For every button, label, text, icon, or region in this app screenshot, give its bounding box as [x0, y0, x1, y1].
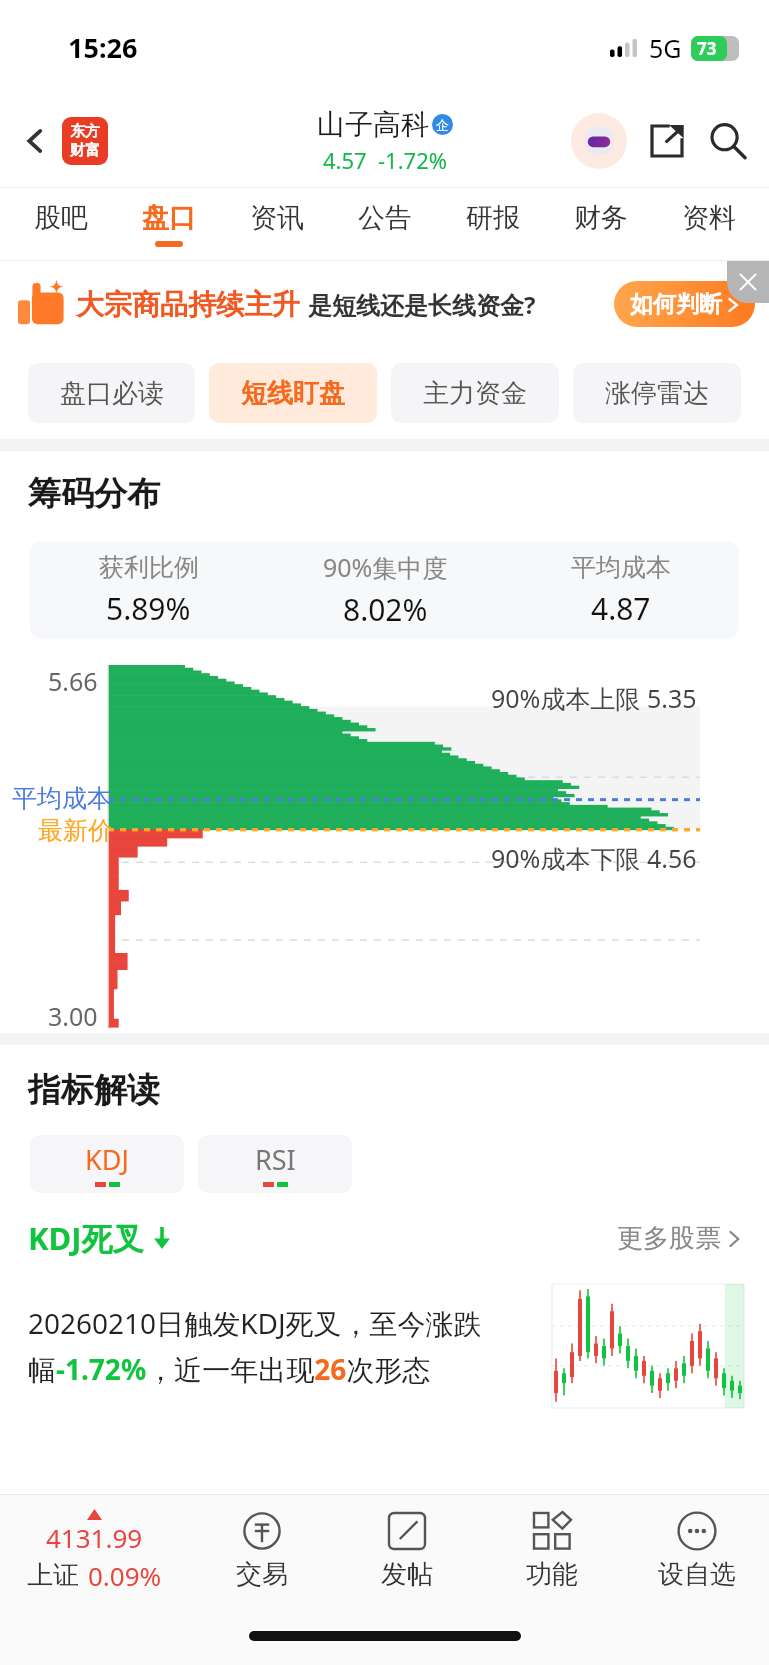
button[interactable]: 盘口	[115, 188, 223, 260]
button[interactable]: 主力资金	[391, 363, 559, 423]
button[interactable]: Share	[641, 115, 693, 167]
button[interactable]: Close ad	[727, 261, 769, 303]
staticText: 设自选	[658, 1558, 736, 1591]
staticText: 15:26	[68, 29, 138, 66]
button[interactable]: 财务	[547, 188, 655, 260]
staticText: 平均成本	[571, 552, 671, 583]
staticText: 资料	[682, 201, 736, 235]
staticText: 获利比例	[99, 552, 199, 583]
button[interactable]: East Money logo	[62, 117, 108, 165]
button[interactable]: 设自选	[624, 1495, 769, 1607]
button[interactable]: Search	[701, 114, 755, 168]
staticText: 东方	[70, 122, 100, 141]
button[interactable]: 股吧	[6, 188, 115, 260]
staticText: KDJ	[85, 1141, 129, 1178]
staticText: 企	[436, 117, 449, 133]
staticText: 交易	[236, 1558, 288, 1591]
button[interactable]: 短线盯盘	[209, 363, 377, 423]
staticText: 功能	[526, 1558, 578, 1591]
button[interactable]: 大宗商品持续主升	[18, 261, 755, 347]
button[interactable]: 盘口必读	[28, 363, 195, 423]
button[interactable]: RSI	[198, 1135, 352, 1193]
staticText: 8.02%	[343, 589, 428, 630]
button[interactable]: 研报	[439, 188, 547, 260]
staticText: 主力资金	[423, 377, 527, 410]
staticText: RSI	[255, 1141, 296, 1178]
staticText: 大宗商品持续主升	[76, 287, 300, 322]
staticText: 最新价	[38, 815, 113, 846]
staticText: 指标解读	[28, 1069, 160, 1111]
button[interactable]: 交易	[189, 1495, 334, 1607]
button[interactable]: 获利比例	[30, 541, 739, 639]
staticText: 是短线还是长线资金?	[308, 288, 536, 321]
staticText: 3.00	[48, 999, 98, 1033]
staticText: 4.87	[591, 588, 651, 629]
button[interactable]: KDJ死叉	[28, 1217, 741, 1259]
staticText: 73	[697, 37, 717, 60]
staticText: 90%成本上限 5.35	[491, 681, 697, 715]
staticText: 90%集中度	[323, 550, 448, 584]
staticText: 5G	[649, 31, 682, 65]
staticText: 更多股票	[617, 1222, 721, 1255]
staticText: -1.72%	[378, 145, 448, 175]
staticText: 研报	[466, 201, 520, 235]
staticText: 股吧	[34, 201, 88, 235]
staticText: 发帖	[381, 1558, 433, 1591]
button[interactable]: 公告	[331, 188, 439, 260]
button[interactable]: 涨停雷达	[573, 363, 741, 423]
button[interactable]: 资料	[655, 188, 763, 260]
staticText: 盘口必读	[60, 377, 164, 410]
staticText: 4.57	[323, 145, 367, 175]
staticText: 盘口	[142, 201, 196, 235]
button[interactable]: 如何判断	[614, 281, 755, 327]
staticText: 4131.99	[46, 1520, 143, 1555]
staticText: 短线盯盘	[241, 377, 345, 410]
staticText: 公告	[358, 201, 412, 235]
staticText: 如何判断	[630, 290, 722, 319]
button[interactable]: AI assistant	[569, 111, 629, 171]
button[interactable]: 4131.99	[0, 1495, 189, 1607]
button[interactable]: KDJ	[30, 1135, 184, 1193]
staticText: 0.09%	[88, 1558, 162, 1593]
staticText: 5.66	[48, 664, 98, 698]
staticText: 5.89%	[106, 588, 191, 629]
staticText: 涨停雷达	[605, 377, 709, 410]
staticText: KDJ死叉	[28, 1217, 144, 1259]
button[interactable]: Back	[12, 118, 58, 164]
staticText: 资讯	[250, 201, 304, 235]
staticText: 山子高科	[317, 107, 429, 142]
staticText: 财务	[574, 201, 628, 235]
staticText: 平均成本	[12, 783, 112, 814]
staticText: 上证	[27, 1559, 79, 1592]
button[interactable]: 功能	[479, 1495, 624, 1607]
button[interactable]: 发帖	[334, 1495, 479, 1607]
staticText: 财富	[70, 141, 100, 160]
button[interactable]: 资讯	[223, 188, 331, 260]
staticText: 90%成本下限 4.56	[491, 841, 697, 875]
staticText: 20260210日触发KDJ死叉，至今涨跌幅-1.72%，近一年出现26次形态	[28, 1304, 539, 1388]
staticText: 筹码分布	[28, 473, 160, 515]
